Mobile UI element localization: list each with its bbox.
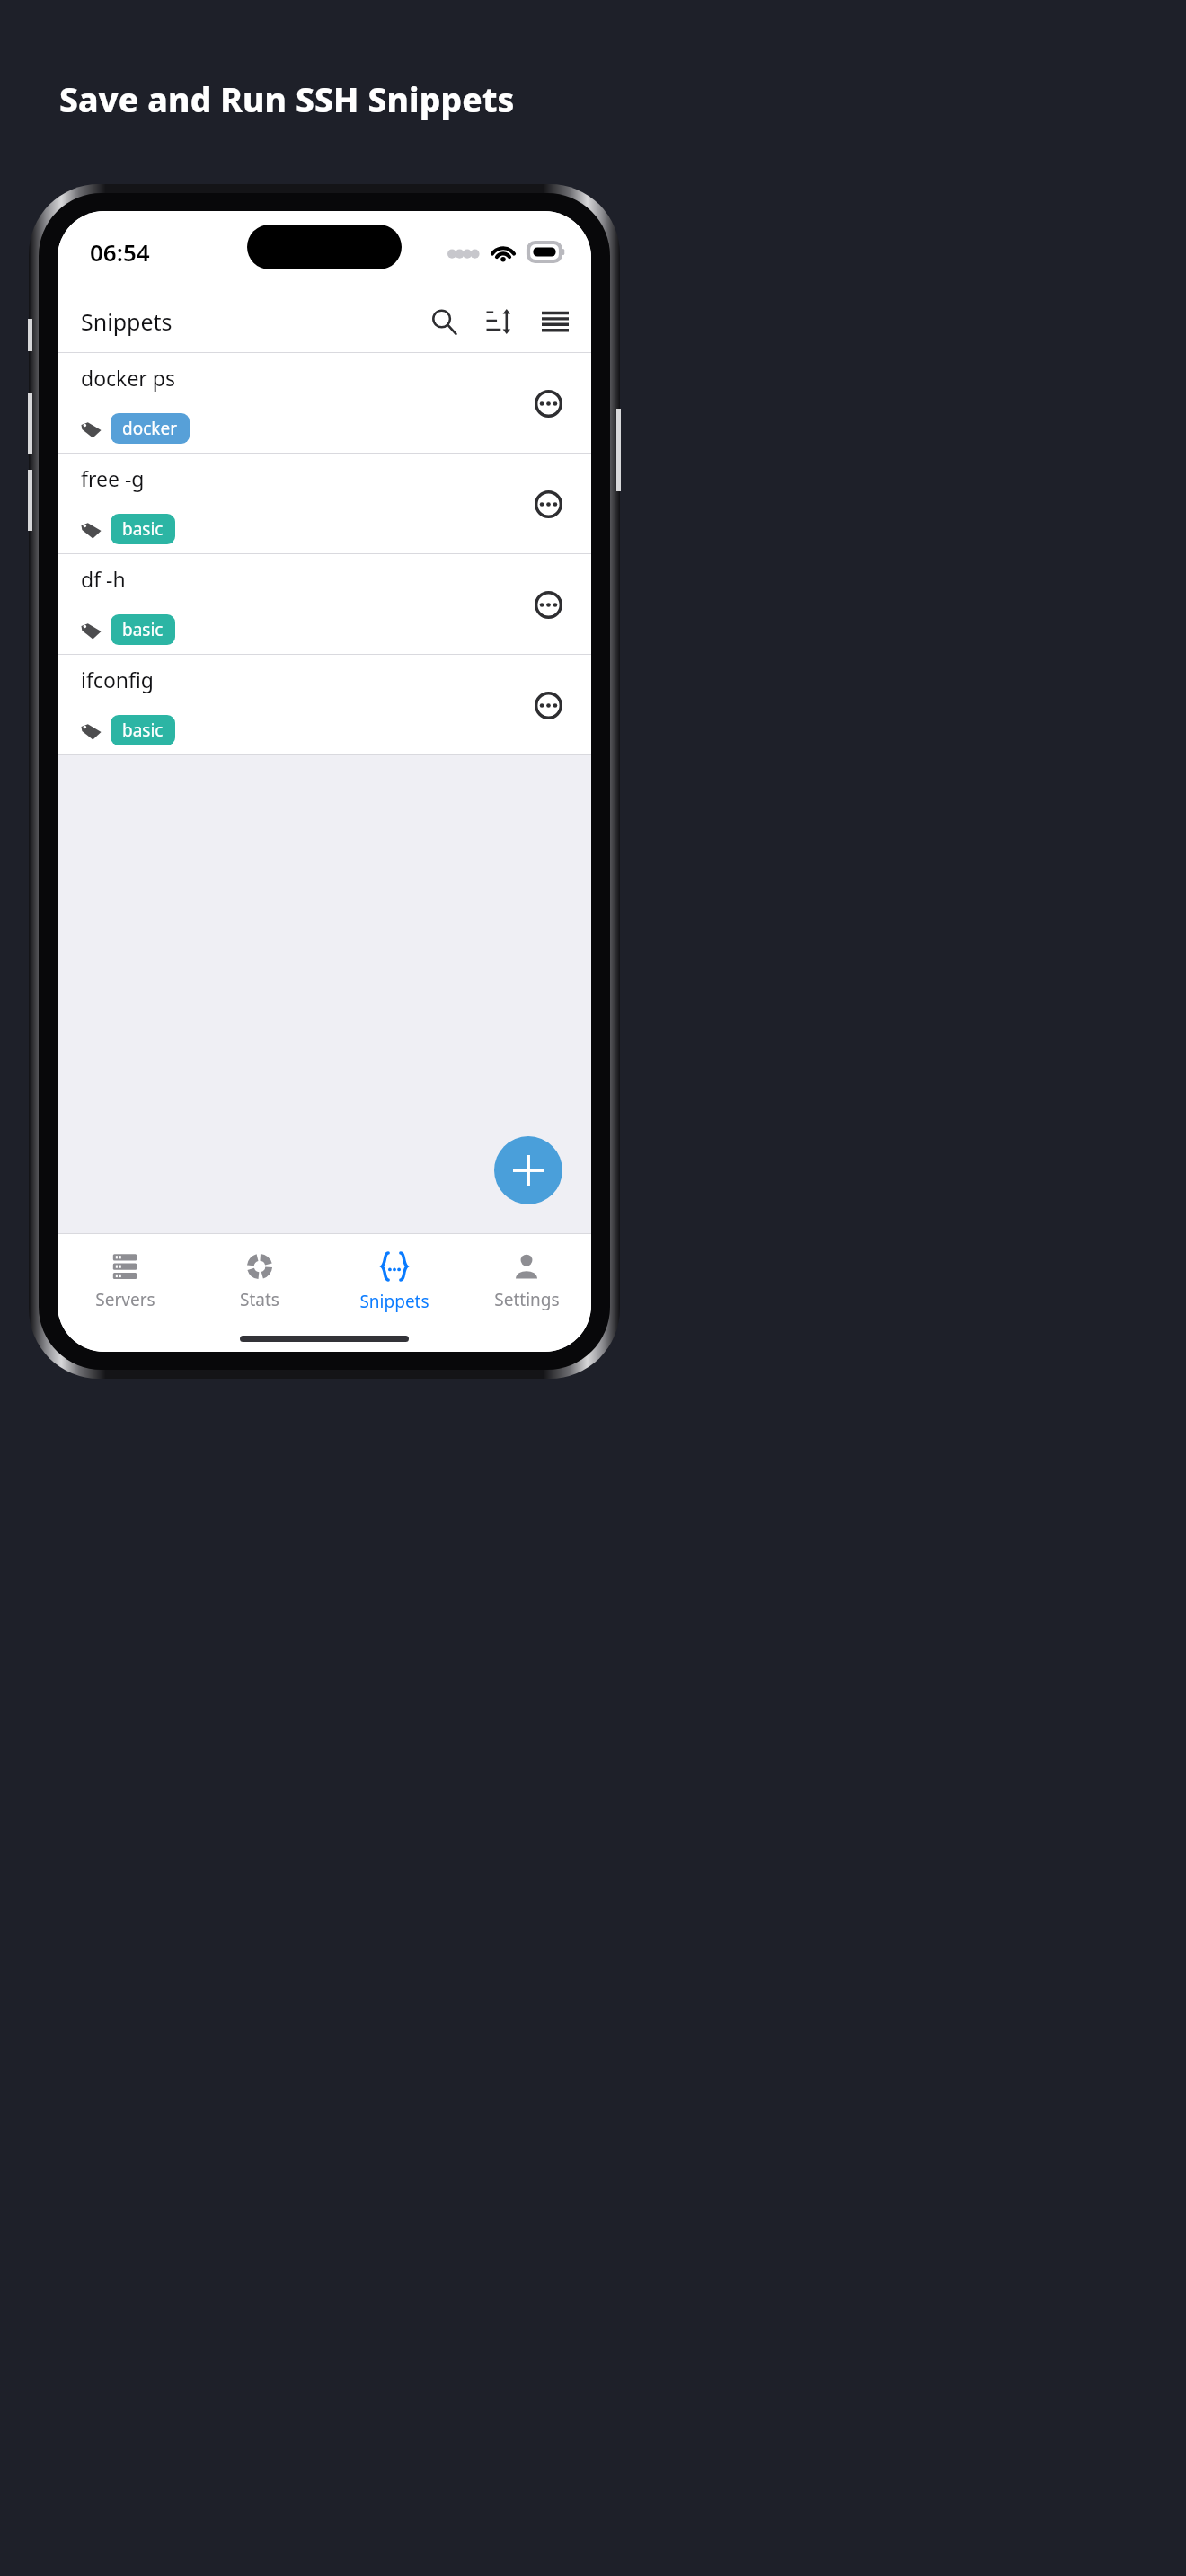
button[interactable]: More options	[525, 682, 571, 728]
button[interactable]: Menu	[532, 298, 579, 345]
button[interactable]: docker ps	[58, 353, 591, 454]
button[interactable]: Settings	[462, 1248, 591, 1317]
button[interactable]: free -g	[58, 454, 591, 554]
button[interactable]: Stats	[192, 1248, 327, 1317]
button[interactable]: More options	[525, 380, 571, 427]
button[interactable]: Servers	[58, 1248, 192, 1317]
button[interactable]: Search	[420, 298, 467, 345]
staticText: Stats	[240, 1288, 279, 1311]
staticText: free -g	[81, 464, 145, 492]
button[interactable]: More options	[525, 481, 571, 527]
button[interactable]: Sort	[476, 298, 523, 345]
staticText: Save and Run SSH Snippets	[59, 76, 515, 121]
button[interactable]: ifconfig	[58, 655, 591, 755]
button[interactable]: Add snippet	[494, 1136, 562, 1204]
staticText: Servers	[95, 1288, 155, 1311]
staticText: Settings	[494, 1288, 560, 1311]
staticText: df -h	[81, 565, 126, 593]
staticText: basic	[122, 517, 164, 541]
staticText: 06:54	[90, 236, 150, 268]
button[interactable]: Snippets	[327, 1246, 462, 1319]
staticText: basic	[122, 719, 164, 742]
staticText: ifconfig	[81, 666, 155, 693]
staticText: basic	[122, 618, 164, 641]
staticText: docker ps	[81, 364, 175, 392]
staticText: Snippets	[81, 306, 173, 337]
button[interactable]: df -h	[58, 554, 591, 655]
staticText: docker	[122, 417, 178, 440]
button[interactable]: More options	[525, 581, 571, 628]
staticText: Snippets	[359, 1290, 429, 1313]
